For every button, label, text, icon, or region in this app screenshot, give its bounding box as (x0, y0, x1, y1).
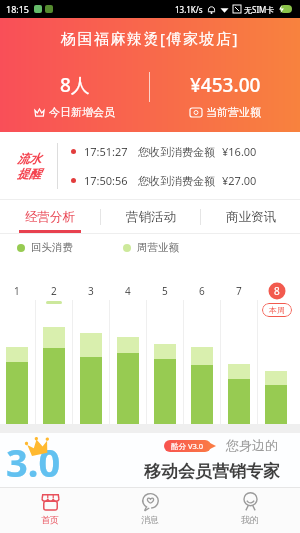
staticText: 8人 (60, 72, 90, 98)
button[interactable]: 我的 (200, 488, 300, 533)
staticText: 商业资讯 (226, 209, 276, 225)
staticText: ¥16.00 (222, 144, 257, 159)
staticText: 当前营业额 (206, 105, 261, 119)
staticText: 3 (88, 284, 94, 298)
staticText: 回头消费 (31, 241, 73, 254)
staticText: 无SIM卡 (244, 4, 275, 15)
staticText: 4 (125, 284, 131, 298)
button[interactable]: 商业资讯 (201, 200, 300, 233)
staticText: 消息 (141, 514, 159, 525)
staticText: 首页 (41, 514, 59, 525)
staticText: 5 (162, 284, 168, 298)
button[interactable]: 经营分析 (0, 200, 100, 233)
staticText: 经营分析 (25, 209, 75, 225)
staticText: 您身边的 (226, 437, 278, 453)
staticText: 提醒 (17, 166, 41, 181)
staticText: 13.1K/s (175, 4, 203, 15)
button[interactable]: ¥453.00 (150, 58, 300, 132)
staticText: 3.0 (6, 436, 61, 488)
button[interactable]: 17:50:56 (58, 166, 300, 195)
button[interactable]: 3.0 (0, 433, 300, 487)
staticText: 我的 (241, 514, 259, 525)
staticText: 6 (199, 284, 205, 298)
staticText: 您收到消费金额 (138, 145, 215, 159)
staticText: 酷分 V3.0 (171, 441, 204, 451)
button[interactable]: 8人 (0, 58, 149, 132)
staticText: 您收到消费金额 (138, 174, 215, 188)
staticText: 18:15 (6, 3, 30, 15)
staticText: 17:51:27 (84, 144, 128, 159)
staticText: ¥27.00 (222, 173, 257, 188)
staticText: 营销活动 (126, 209, 176, 225)
staticText: 杨国福麻辣烫[傅家坡店] (61, 28, 239, 48)
staticText: ¥453.00 (190, 72, 261, 98)
button[interactable]: 消息 (100, 488, 200, 533)
button[interactable]: 营销活动 (101, 200, 200, 233)
staticText: 7 (236, 284, 242, 298)
staticText: 2 (51, 284, 57, 298)
staticText: 流水 (17, 151, 41, 166)
button[interactable]: 17:51:27 (58, 137, 300, 166)
staticText: 17:50:56 (84, 173, 128, 188)
button[interactable]: 首页 (0, 488, 100, 533)
staticText: 本周 (269, 305, 285, 315)
staticText: 今日新增会员 (49, 105, 115, 119)
staticText: 移动会员营销专家 (144, 461, 280, 482)
staticText: 8 (274, 284, 280, 298)
staticText: 1 (14, 284, 20, 298)
staticText: 周营业额 (137, 241, 179, 254)
